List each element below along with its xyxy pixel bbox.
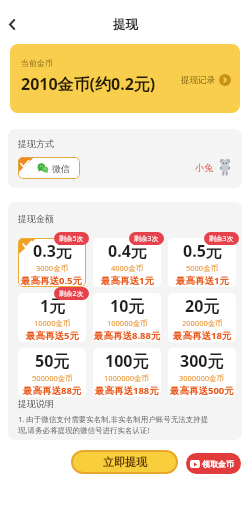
staticText: 提现 [113,17,138,33]
staticText: 3000000金币 [179,373,225,383]
staticText: 最高再送500元 [170,384,234,397]
staticText: 提现方式 [18,138,54,149]
staticText: 1. 由于微信支付需要实名制,非实名制用户账号无法支持提 现,请务必将提现的微信… [18,414,209,435]
staticText: 0.5元 [183,240,222,262]
button[interactable]: 100元 [93,348,161,397]
staticText: 提现记录 [181,75,215,86]
staticText: 100000金币 [107,318,148,328]
staticText: 3000金币 [36,263,69,273]
staticText: 提现金额 [18,213,54,224]
staticText: 最高再送5元 [26,329,79,342]
staticText: 剩余3次 [134,234,159,243]
staticText: 300元 [180,350,224,372]
staticText: 剩余2次 [59,289,84,298]
button[interactable]: 1元 [18,293,86,342]
staticText: 最高再送8.88元 [94,329,161,342]
staticText: 2010金币(约0.2元) [21,73,156,95]
staticText: 1元 [40,295,66,317]
staticText: 小兔 [195,162,213,173]
staticText: 10000金币 [34,318,71,328]
button[interactable]: 微信 [18,157,80,179]
staticText: 提现说明 [18,398,54,409]
button[interactable]: 提现记录 [181,74,231,86]
staticText: 剩余3次 [209,234,234,243]
button[interactable]: 0.5元 [168,238,236,287]
staticText: 剩余5次 [59,234,84,243]
staticText: 最高再送188元 [95,384,159,397]
staticText: 20元 [185,295,220,317]
staticText: 微信 [52,163,70,174]
staticText: 领取金币 [202,459,234,469]
staticText: 0.4元 [108,240,147,262]
staticText: 立即提现 [103,455,147,469]
staticText: 最高再送1元 [176,274,229,287]
staticText: 100元 [105,350,149,372]
button[interactable]: 20元 [168,293,236,342]
button[interactable]: 领取金币 [186,453,241,474]
staticText: 最高再送1元 [101,274,154,287]
button[interactable]: 0.4元 [93,238,161,287]
staticText: 5000金币 [186,263,219,273]
staticText: 200000金币 [182,318,223,328]
staticText: 最高再送88元 [23,384,82,397]
staticText: 4000金币 [111,263,144,273]
button[interactable]: 立即提现 [71,450,178,474]
staticText: 最高再送0.5元 [21,274,83,287]
staticText: 1000000金币 [104,373,150,383]
staticText: 当前金币 [21,58,53,68]
staticText: 最高再送18元 [173,329,232,342]
staticText: 500000金币 [32,373,73,383]
staticText: 50元 [35,350,70,372]
staticText: 0.3元 [33,240,72,262]
staticText: 10元 [110,295,145,317]
button[interactable]: 300元 [168,348,236,397]
button[interactable]: Back [0,12,24,36]
button[interactable]: 小兔 [218,159,232,176]
button[interactable]: 0.3元 [18,238,86,287]
button[interactable]: 10元 [93,293,161,342]
button[interactable]: 50元 [18,348,86,397]
